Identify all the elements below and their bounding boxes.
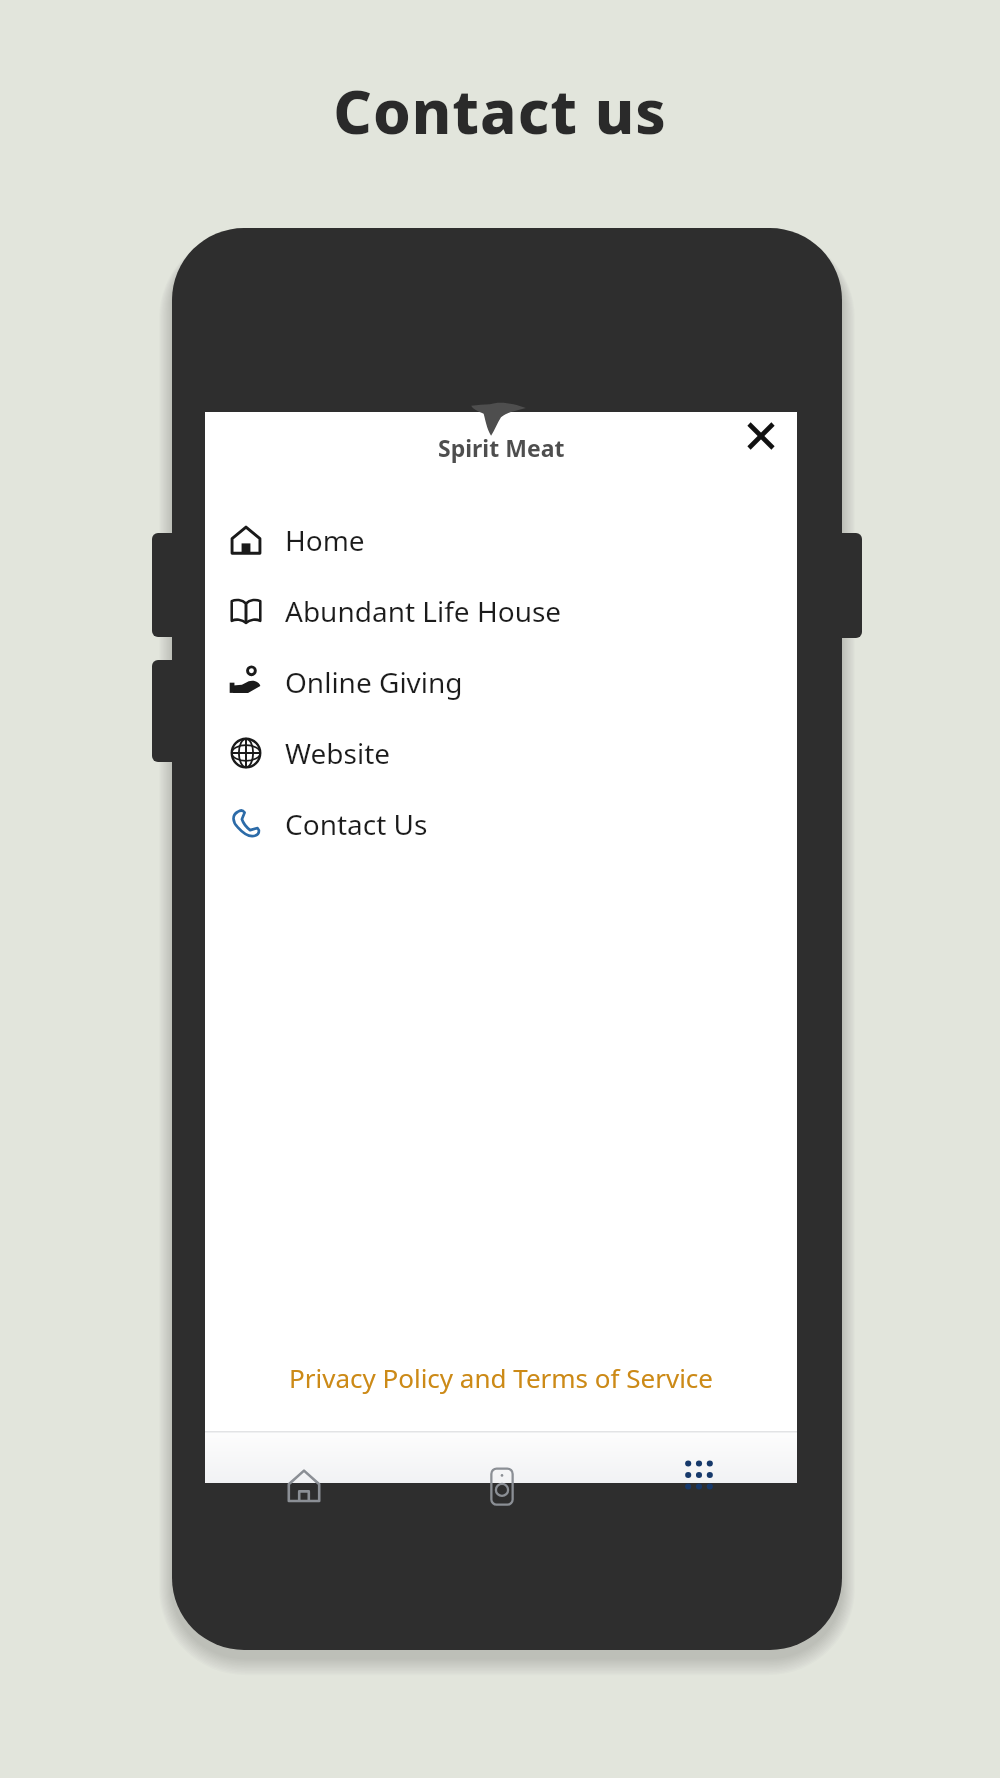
staticText: Spirit Meat — [438, 432, 565, 463]
button[interactable]: Online Giving — [205, 646, 797, 717]
staticText: Privacy Policy and Terms of Service — [289, 1360, 713, 1395]
button[interactable]: Recents — [403, 1431, 600, 1483]
button[interactable]: Contact Us — [205, 788, 797, 859]
staticText: Home — [285, 521, 365, 559]
staticText: Website — [285, 734, 391, 772]
button[interactable]: Privacy Policy and Terms of Service — [205, 1346, 797, 1409]
button[interactable]: Website — [205, 717, 797, 788]
button[interactable]: Home — [205, 504, 797, 575]
staticText: Contact us — [333, 70, 667, 152]
staticText: Contact Us — [285, 805, 428, 843]
button[interactable]: Home — [205, 1431, 403, 1483]
button[interactable]: Abundant Life House — [205, 575, 797, 646]
button[interactable]: Close — [729, 404, 793, 468]
staticText: Online Giving — [285, 663, 463, 701]
staticText: Abundant Life House — [285, 592, 562, 630]
button[interactable]: All apps — [600, 1431, 797, 1483]
